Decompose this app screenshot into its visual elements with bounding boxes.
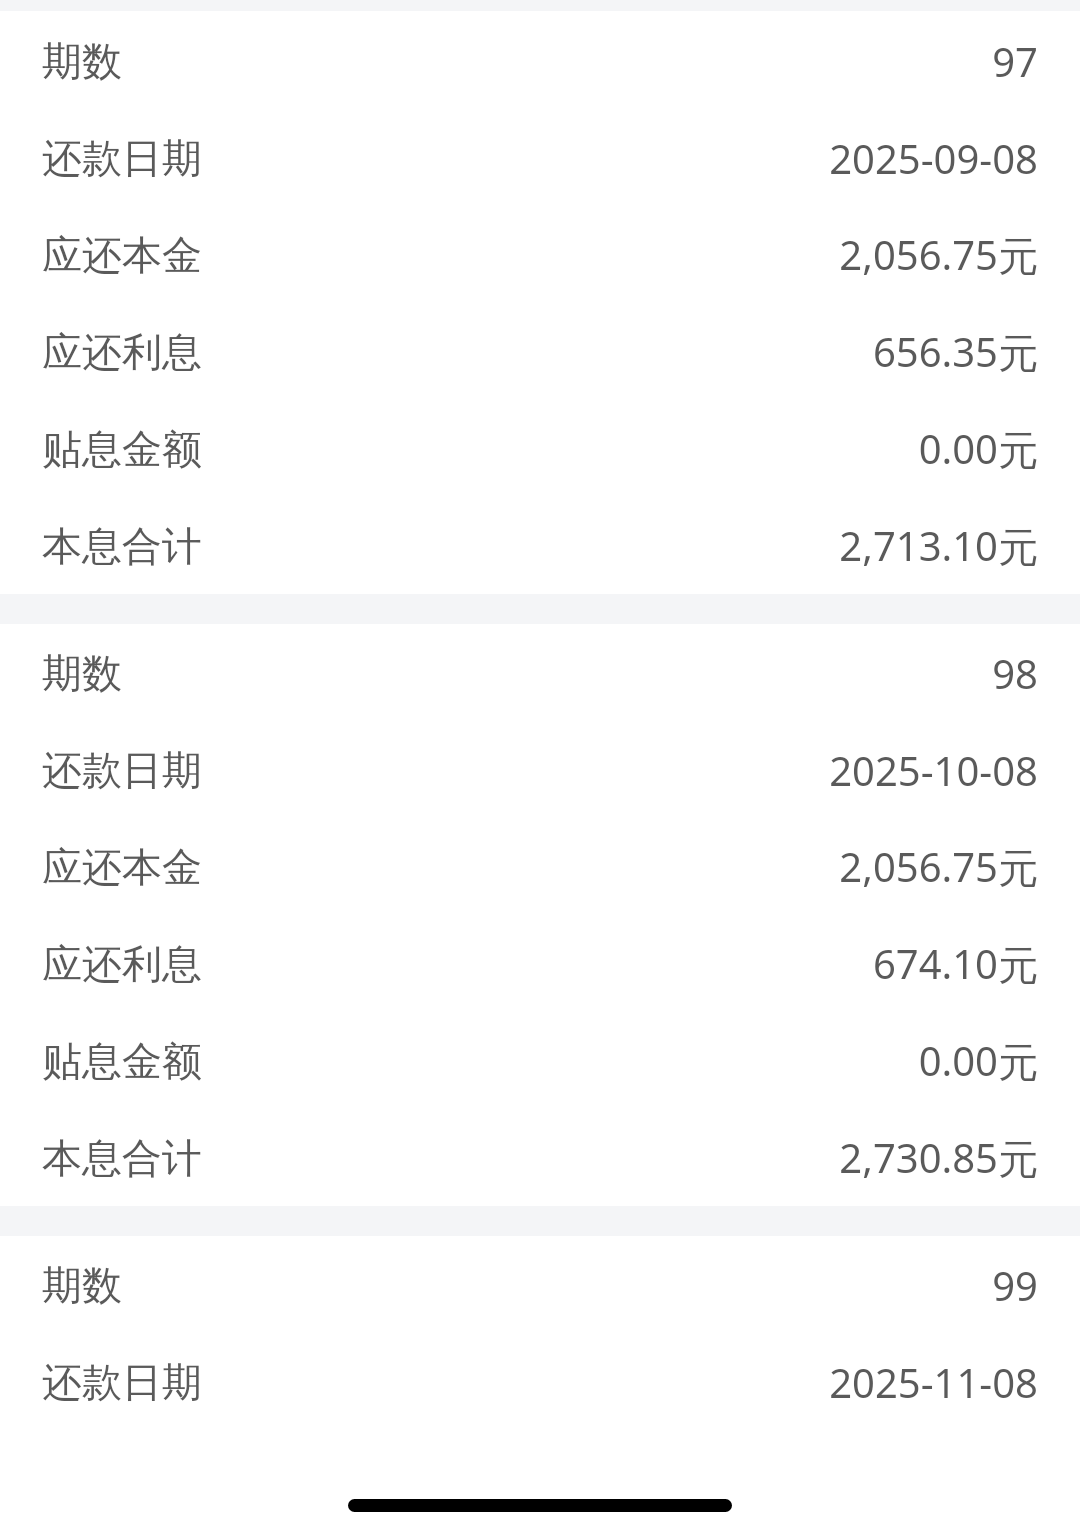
- button[interactable]: 还款日期: [0, 109, 1080, 206]
- staticText: 期数: [42, 648, 992, 698]
- staticText: 还款日期: [42, 133, 829, 183]
- staticText: 2025-11-08: [829, 1355, 1038, 1409]
- staticText: 应还本金: [42, 230, 839, 280]
- button[interactable]: 应还利息: [0, 915, 1080, 1012]
- button[interactable]: 还款日期: [0, 721, 1080, 818]
- staticText: 还款日期: [42, 1357, 829, 1407]
- button[interactable]: 贴息金额: [0, 1012, 1080, 1109]
- staticText: 99: [992, 1258, 1038, 1312]
- staticText: 2,713.10元: [839, 518, 1038, 573]
- staticText: 本息合计: [42, 1133, 839, 1183]
- button[interactable]: 本息合计: [0, 497, 1080, 594]
- staticText: 2025-10-08: [829, 743, 1038, 797]
- button[interactable]: 应还本金: [0, 818, 1080, 915]
- staticText: 应还利息: [42, 327, 872, 377]
- staticText: 2,056.75元: [839, 839, 1038, 894]
- staticText: 贴息金额: [42, 1036, 918, 1086]
- button[interactable]: 期数: [0, 1236, 1080, 1333]
- staticText: 98: [992, 646, 1038, 700]
- staticText: 还款日期: [42, 745, 829, 795]
- staticText: 2025-09-08: [829, 131, 1038, 185]
- staticText: 本息合计: [42, 521, 839, 571]
- staticText: 97: [992, 34, 1038, 88]
- button[interactable]: 期数: [0, 12, 1080, 109]
- button[interactable]: 期数: [0, 624, 1080, 721]
- staticText: 0.00元: [918, 1033, 1038, 1088]
- staticText: 656.35元: [872, 324, 1038, 379]
- staticText: 2,730.85元: [839, 1130, 1038, 1185]
- staticText: 期数: [42, 1260, 992, 1310]
- button[interactable]: 应还本金: [0, 206, 1080, 303]
- staticText: 674.10元: [872, 936, 1038, 991]
- button[interactable]: 贴息金额: [0, 400, 1080, 497]
- staticText: 贴息金额: [42, 424, 918, 474]
- button[interactable]: 还款日期: [0, 1333, 1080, 1430]
- staticText: 应还本金: [42, 842, 839, 892]
- staticText: 0.00元: [918, 421, 1038, 476]
- staticText: 2,056.75元: [839, 227, 1038, 282]
- staticText: 期数: [42, 36, 992, 86]
- button[interactable]: 应还利息: [0, 303, 1080, 400]
- staticText: 应还利息: [42, 939, 872, 989]
- button[interactable]: 本息合计: [0, 1109, 1080, 1206]
